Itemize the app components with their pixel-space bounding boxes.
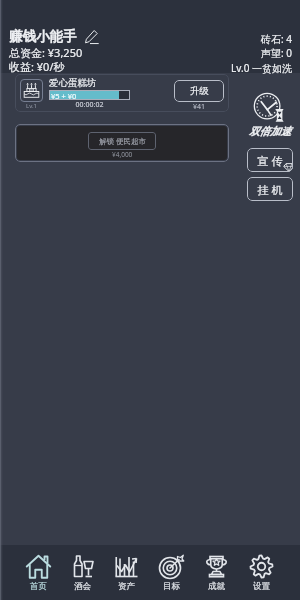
button[interactable]: 资产: [104, 545, 149, 600]
staticText: 挂 机: [247, 182, 293, 197]
staticText: 成就: [208, 581, 225, 592]
staticText: 首页: [30, 581, 47, 592]
button[interactable]: 升级: [174, 80, 224, 102]
staticText: ¥4,000: [112, 150, 133, 159]
button[interactable]: 编辑名称: [84, 29, 99, 44]
staticText: 解锁 便民超市: [99, 136, 146, 146]
button[interactable]: 酒会: [60, 545, 104, 600]
staticText: 总资金: ¥3,250 收益: ¥0/秒: [9, 45, 83, 74]
staticText: ¥41: [193, 102, 206, 112]
staticText: 00:00:02: [49, 100, 130, 110]
staticText: 目标: [163, 581, 180, 592]
staticText: 设置: [253, 581, 270, 592]
staticText: Lv.1: [26, 102, 37, 110]
staticText: 升级: [190, 85, 209, 97]
button[interactable]: 成就: [194, 545, 239, 600]
staticText: 宣 传: [247, 153, 293, 168]
button[interactable]: 挂 机: [247, 177, 293, 201]
staticText: 双倍加速: [249, 125, 291, 138]
button[interactable]: 首页: [16, 545, 60, 600]
staticText: 赚钱小能手: [9, 28, 77, 45]
button[interactable]: 设置: [239, 545, 284, 600]
button[interactable]: 解锁 便民超市: [17, 126, 227, 160]
staticText: 爱心蛋糕坊: [49, 77, 97, 89]
staticText: ¥5 + ¥0: [51, 91, 77, 101]
button[interactable]: 宣 传: [247, 148, 293, 172]
button[interactable]: Lv.1: [15, 74, 229, 112]
button[interactable]: 目标: [149, 545, 194, 600]
staticText: 砖石: 4 声望: 0 Lv.0 一贫如洗: [231, 32, 292, 75]
staticText: 酒会: [74, 581, 91, 592]
button[interactable]: 双倍加速: [247, 92, 293, 138]
staticText: 资产: [118, 581, 135, 592]
